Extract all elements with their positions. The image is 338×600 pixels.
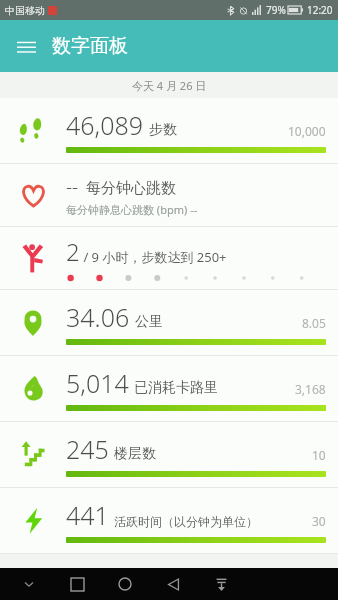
staticText: 34.06 — [66, 300, 130, 334]
staticText: 活跃时间（以分钟为单位） — [114, 514, 258, 529]
button[interactable]: Hide keyboard — [16, 571, 42, 597]
staticText: 每分钟心跳数 — [86, 179, 176, 198]
staticText: 10 — [312, 447, 326, 463]
button[interactable]: 5,014 — [0, 356, 338, 421]
staticText: 每分钟静息心跳数 (bpm) -- — [66, 202, 198, 217]
staticText: -- — [66, 173, 79, 199]
button[interactable]: Recent apps — [64, 571, 90, 597]
button[interactable]: 46,089 — [0, 98, 338, 163]
button[interactable]: 441 — [0, 488, 338, 553]
staticText: 步数 — [149, 121, 177, 139]
staticText: / 9 小时，步数达到 250+ — [80, 248, 227, 266]
button[interactable]: -- — [0, 164, 338, 226]
staticText: 46,089 — [66, 108, 144, 142]
button[interactable]: 34.06 — [0, 290, 338, 355]
button[interactable]: 2 — [0, 227, 338, 289]
staticText: 公里 — [135, 313, 163, 331]
staticText: 已消耗卡路里 — [134, 379, 218, 397]
staticText: 441 — [66, 498, 109, 532]
staticText: 30 — [312, 513, 326, 529]
staticText: 10,000 — [288, 123, 326, 139]
button[interactable]: Back — [160, 571, 186, 597]
staticText: 5,014 — [66, 366, 129, 400]
staticText: 中国移动 — [5, 4, 45, 17]
button[interactable]: Open navigation menu — [0, 20, 52, 72]
button[interactable]: Home — [112, 571, 138, 597]
staticText: 12:20 — [307, 3, 333, 17]
button[interactable]: Downloads — [208, 571, 234, 597]
staticText: 79% — [266, 3, 286, 17]
staticText: 245 — [66, 432, 109, 466]
button[interactable]: 245 — [0, 422, 338, 487]
staticText: 数字面板 — [52, 34, 128, 58]
staticText: 2 — [66, 235, 80, 268]
staticText: 今天 4 月 26 日 — [132, 78, 207, 93]
staticText: 楼层数 — [114, 445, 156, 463]
staticText: 8.05 — [302, 315, 326, 331]
staticText: 3,168 — [295, 381, 326, 397]
